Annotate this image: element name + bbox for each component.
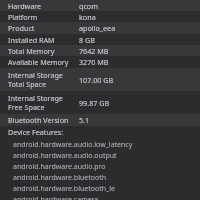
button[interactable]: Bluetooth Version bbox=[0, 114, 200, 126]
button[interactable]: Total Memory bbox=[0, 45, 200, 56]
staticText: Internal Storage Total Space bbox=[8, 70, 63, 90]
button[interactable]: android.hardware.bluetooth_le bbox=[13, 183, 200, 194]
button[interactable]: Available Memory bbox=[0, 56, 200, 68]
staticText: android.hardware.bluetooth bbox=[13, 173, 107, 183]
button[interactable]: android.hardware.audio.pro bbox=[13, 161, 200, 172]
staticText: android.hardware.bluetooth_le bbox=[13, 184, 115, 194]
staticText: Total Memory bbox=[8, 46, 55, 56]
button[interactable]: Internal Storage Free Space bbox=[0, 91, 200, 114]
button[interactable]: android.hardware.audio.output bbox=[13, 150, 200, 161]
staticText: 7642 MB bbox=[79, 46, 109, 56]
staticText: kona bbox=[79, 12, 96, 22]
staticText: Installed RAM bbox=[8, 35, 55, 45]
staticText: android.hardware.audio.output bbox=[13, 151, 117, 161]
staticText: 3270 MB bbox=[79, 57, 109, 67]
staticText: Platform bbox=[8, 12, 38, 22]
staticText: qcom bbox=[79, 1, 98, 11]
button[interactable]: Device Features: bbox=[0, 126, 200, 138]
button[interactable]: Product bbox=[0, 22, 200, 34]
button[interactable]: Installed RAM bbox=[0, 34, 200, 45]
button[interactable]: android.hardware.bluetooth bbox=[13, 172, 200, 183]
staticText: Available Memory bbox=[8, 57, 69, 67]
staticText: Product bbox=[8, 23, 35, 33]
staticText: android.hardware.camera bbox=[13, 195, 99, 200]
staticText: 99.87 GB bbox=[79, 98, 110, 108]
button[interactable]: android.hardware.audio.low_latency bbox=[13, 139, 200, 150]
staticText: 8 GB bbox=[79, 35, 95, 45]
button[interactable]: Internal Storage Total Space bbox=[0, 68, 200, 91]
button[interactable]: Platform bbox=[0, 11, 200, 22]
staticText: Internal Storage Free Space bbox=[8, 93, 63, 113]
staticText: Device Features: bbox=[8, 127, 64, 137]
staticText: Hardware bbox=[8, 1, 42, 11]
staticText: apollo_eea bbox=[79, 23, 116, 33]
button[interactable]: Hardware bbox=[0, 0, 200, 11]
button[interactable]: android.hardware.camera bbox=[13, 194, 200, 200]
staticText: android.hardware.audio.pro bbox=[13, 162, 106, 172]
staticText: 5.1 bbox=[79, 115, 90, 125]
staticText: 107.00 GB bbox=[79, 75, 114, 85]
staticText: Bluetooth Version bbox=[8, 115, 69, 125]
staticText: android.hardware.audio.low_latency bbox=[13, 140, 133, 150]
